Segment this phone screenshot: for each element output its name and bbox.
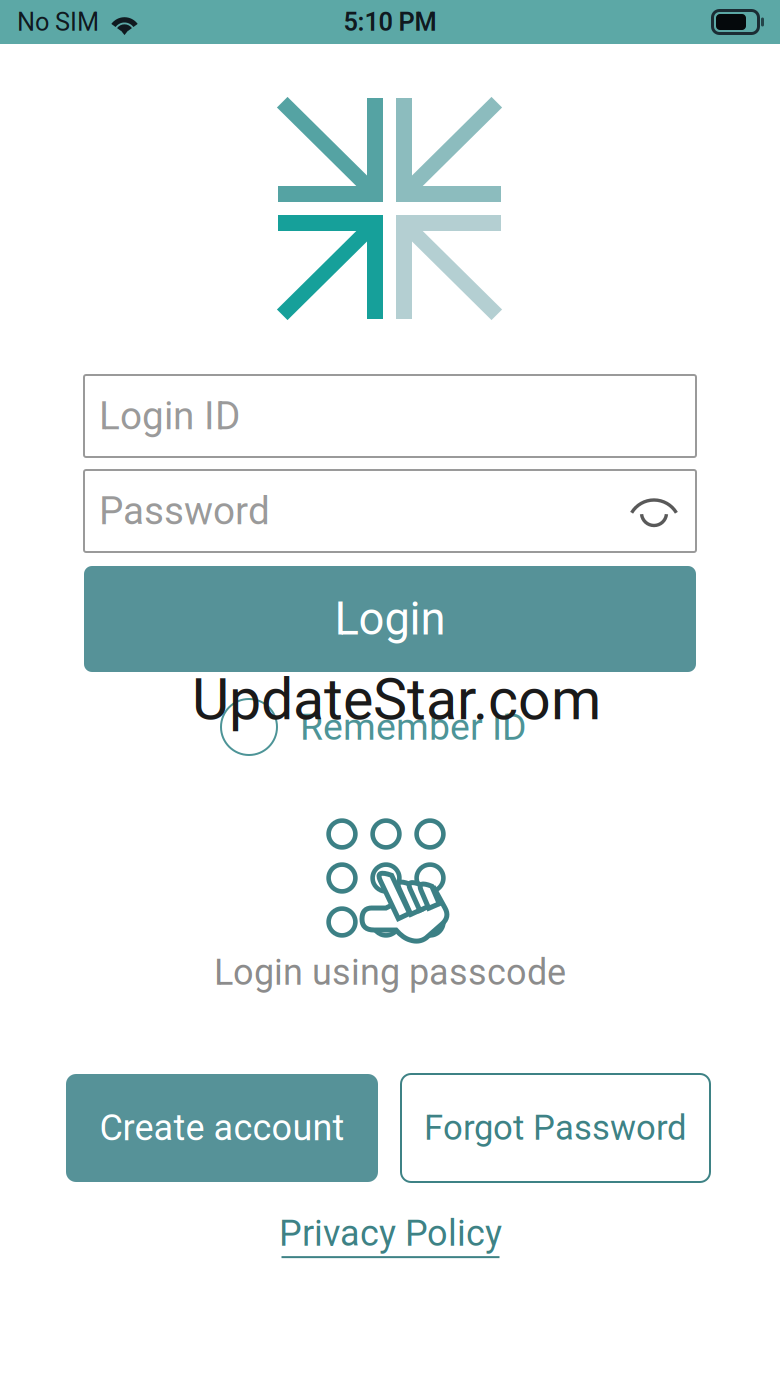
button[interactable]: Remember ID bbox=[221, 698, 527, 756]
staticText: Login bbox=[334, 593, 445, 645]
staticText: Remember ID bbox=[300, 706, 527, 748]
button[interactable]: Forgot Password bbox=[401, 1074, 710, 1182]
button[interactable]: Login bbox=[84, 566, 696, 672]
staticText: No SIM bbox=[17, 7, 99, 36]
button[interactable]: Password bbox=[84, 470, 696, 552]
button[interactable]: Create account bbox=[66, 1074, 378, 1182]
button[interactable]: Login using passcode bbox=[0, 816, 780, 993]
staticText: Forgot Password bbox=[424, 1108, 687, 1148]
button[interactable]: Privacy Policy bbox=[279, 1213, 502, 1258]
staticText: Login using passcode bbox=[214, 952, 566, 993]
staticText: UpdateStar.com bbox=[192, 667, 601, 732]
staticText: 5:10 PM bbox=[343, 7, 436, 36]
staticText: Login ID bbox=[99, 394, 240, 438]
staticText: Create account bbox=[99, 1107, 344, 1148]
button[interactable]: Login ID bbox=[84, 375, 696, 457]
staticText: Password bbox=[99, 489, 270, 533]
staticText: Privacy Policy bbox=[279, 1213, 502, 1254]
